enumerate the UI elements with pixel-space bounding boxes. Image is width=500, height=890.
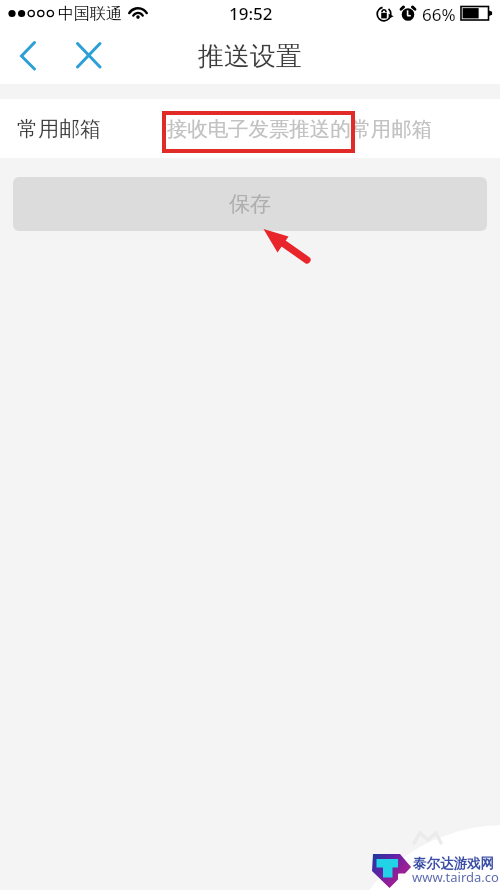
staticText: 接收电子发票推送的常用邮箱 <box>167 116 433 142</box>
staticText: 中国联通 <box>58 4 122 24</box>
button[interactable]: 常用邮箱 <box>0 99 500 158</box>
staticText: www.tairda.com <box>412 868 500 886</box>
button[interactable]: Close <box>66 34 110 78</box>
staticText: 66% <box>422 3 456 26</box>
button[interactable]: Back <box>5 34 49 78</box>
button[interactable]: 保存 <box>13 177 487 231</box>
staticText: 保存 <box>229 191 271 217</box>
staticText: 推送设置 <box>198 40 302 73</box>
staticText: 19:52 <box>229 2 273 25</box>
staticText: 泰尔达游戏网 <box>413 855 494 872</box>
staticText: 常用邮箱 <box>17 116 101 142</box>
